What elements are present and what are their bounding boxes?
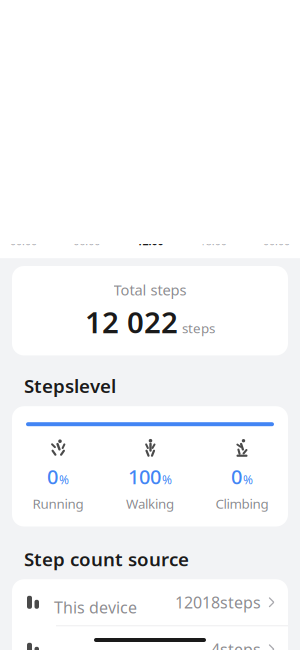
staticText: 4steps [211, 639, 261, 650]
staticText: This device [54, 597, 137, 618]
staticText: 12018steps [175, 592, 261, 613]
staticText: Step count source [24, 546, 189, 571]
button[interactable]: 4steps [12, 626, 288, 650]
staticText: 12 022 [85, 302, 178, 341]
staticText: % [59, 472, 69, 487]
staticText: 18:00 [200, 234, 227, 248]
staticText: 00:00 [10, 234, 37, 248]
staticText: % [243, 472, 253, 487]
staticText: Running [32, 495, 83, 512]
staticText: 00:00 [263, 234, 290, 248]
staticText: steps [182, 319, 215, 337]
staticText: % [162, 472, 172, 487]
staticText: 06:00 [73, 234, 100, 248]
staticText: Stepslevel [24, 373, 116, 398]
staticText: Total steps [113, 280, 186, 299]
staticText: 0 [231, 463, 242, 490]
staticText: 0 [47, 463, 58, 490]
button[interactable]: This device [12, 579, 288, 625]
staticText: 100 [128, 463, 161, 490]
staticText: 12:00 [136, 234, 163, 248]
staticText: Climbing [215, 495, 268, 512]
staticText: Walking [126, 495, 174, 512]
